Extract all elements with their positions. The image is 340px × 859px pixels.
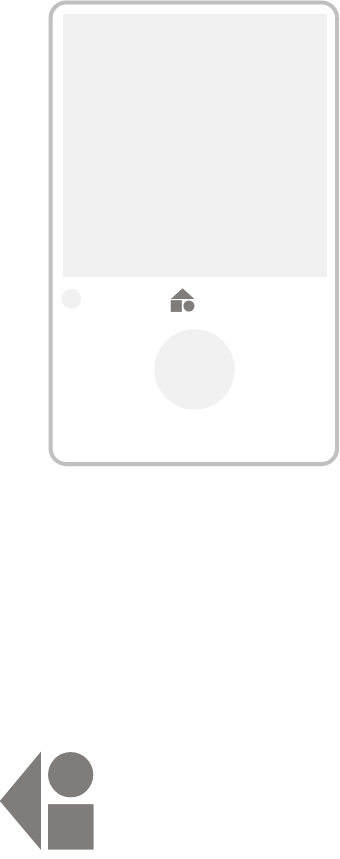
button[interactable]: Brand mark — [0, 752, 94, 850]
button[interactable]: Profile — [61, 289, 81, 309]
button[interactable]: Record — [154, 329, 235, 410]
button[interactable]: Home — [171, 288, 195, 312]
